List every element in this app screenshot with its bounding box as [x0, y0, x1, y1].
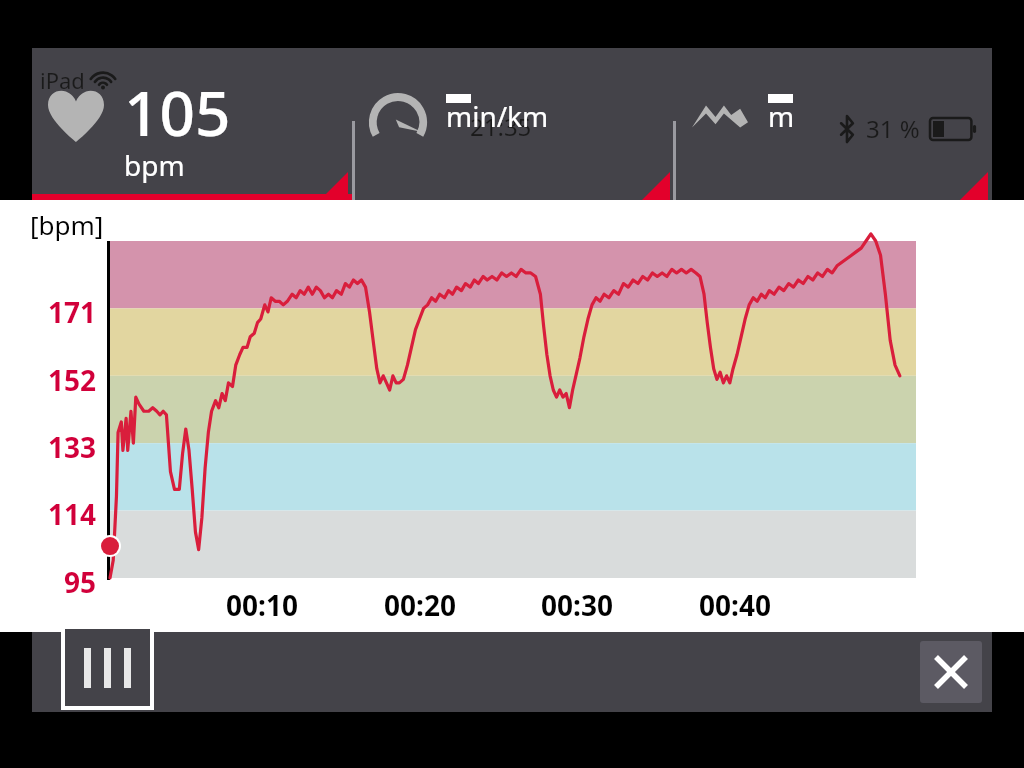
button[interactable]: m	[676, 48, 992, 200]
staticText: 21:35	[470, 110, 532, 143]
staticText: 171	[0, 293, 96, 331]
staticText: 114	[0, 495, 96, 533]
staticText: 00:10	[202, 586, 322, 624]
button[interactable]: Pause	[61, 625, 154, 710]
staticText: 152	[0, 361, 96, 399]
staticText: 133	[0, 428, 96, 466]
staticText: min/km	[446, 97, 549, 135]
staticText: 00:20	[360, 586, 480, 624]
staticText: bpm	[124, 146, 185, 184]
staticText: iPad	[40, 65, 85, 95]
staticText: 105	[124, 70, 231, 154]
staticText: 31 %	[866, 112, 920, 145]
button[interactable]: min/km	[354, 48, 674, 200]
staticText: 00:30	[517, 586, 637, 624]
staticText: [bpm]	[30, 207, 104, 242]
button[interactable]: Close	[920, 641, 982, 703]
button[interactable]: 105	[32, 48, 352, 200]
staticText: 00:40	[675, 586, 795, 624]
staticText: m	[768, 97, 795, 135]
staticText: 95	[0, 563, 96, 601]
